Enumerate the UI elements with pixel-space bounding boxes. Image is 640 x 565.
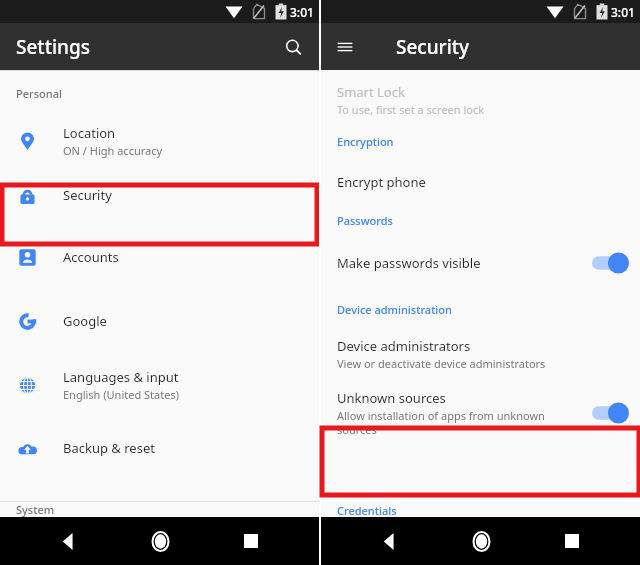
- staticText: Unknown sources: [337, 389, 446, 407]
- button[interactable]: Recent apps: [549, 518, 595, 564]
- button[interactable]: Accounts: [0, 225, 319, 289]
- button[interactable]: Navigation menu: [327, 29, 363, 65]
- staticText: Passwords: [337, 213, 393, 228]
- staticText: To use, first set a screen lock: [337, 102, 485, 117]
- staticText: Make passwords visible: [337, 254, 481, 272]
- staticText: Smart Lock: [337, 83, 405, 101]
- staticText: Accounts: [63, 248, 119, 266]
- staticText: Device administration: [337, 302, 452, 317]
- staticText: Security: [396, 34, 470, 60]
- button[interactable]: Unknown sources: [337, 383, 630, 443]
- button[interactable]: Languages & input: [0, 353, 319, 417]
- staticText: ON / High accuracy: [63, 143, 163, 158]
- staticText: English (United States): [63, 387, 179, 402]
- button[interactable]: Google: [0, 289, 319, 353]
- button[interactable]: Smart Lock: [337, 78, 630, 122]
- staticText: Languages & input: [63, 368, 179, 386]
- button[interactable]: Home: [137, 518, 183, 564]
- staticText: Backup & reset: [63, 439, 155, 457]
- staticText: Encrypt phone: [337, 173, 426, 191]
- staticText: Encryption: [337, 134, 394, 149]
- staticText: Google: [63, 312, 107, 330]
- staticText: 3:01: [611, 4, 635, 20]
- staticText: 3:01: [290, 4, 314, 20]
- button[interactable]: Backup & reset: [0, 417, 319, 479]
- button[interactable]: Back: [366, 518, 412, 564]
- button[interactable]: Recent apps: [228, 518, 274, 564]
- staticText: System: [16, 502, 55, 517]
- staticText: Personal: [16, 86, 62, 101]
- staticText: Location: [63, 124, 116, 142]
- staticText: Device administrators: [337, 337, 471, 355]
- staticText: View or deactivate device administrators: [337, 356, 546, 371]
- button[interactable]: Home: [458, 518, 504, 564]
- staticText: Security: [63, 186, 112, 204]
- button[interactable]: Make passwords visible: [337, 242, 630, 284]
- button[interactable]: Back: [45, 518, 91, 564]
- button[interactable]: Location: [0, 117, 319, 165]
- staticText: Settings: [16, 34, 90, 60]
- button[interactable]: Encrypt phone: [337, 163, 630, 201]
- button[interactable]: Security: [0, 165, 319, 225]
- button[interactable]: Search: [275, 29, 311, 65]
- staticText: Credentials: [337, 503, 397, 517]
- button[interactable]: Device administrators: [337, 331, 630, 377]
- staticText: Allow installation of apps from unknown …: [337, 408, 545, 437]
